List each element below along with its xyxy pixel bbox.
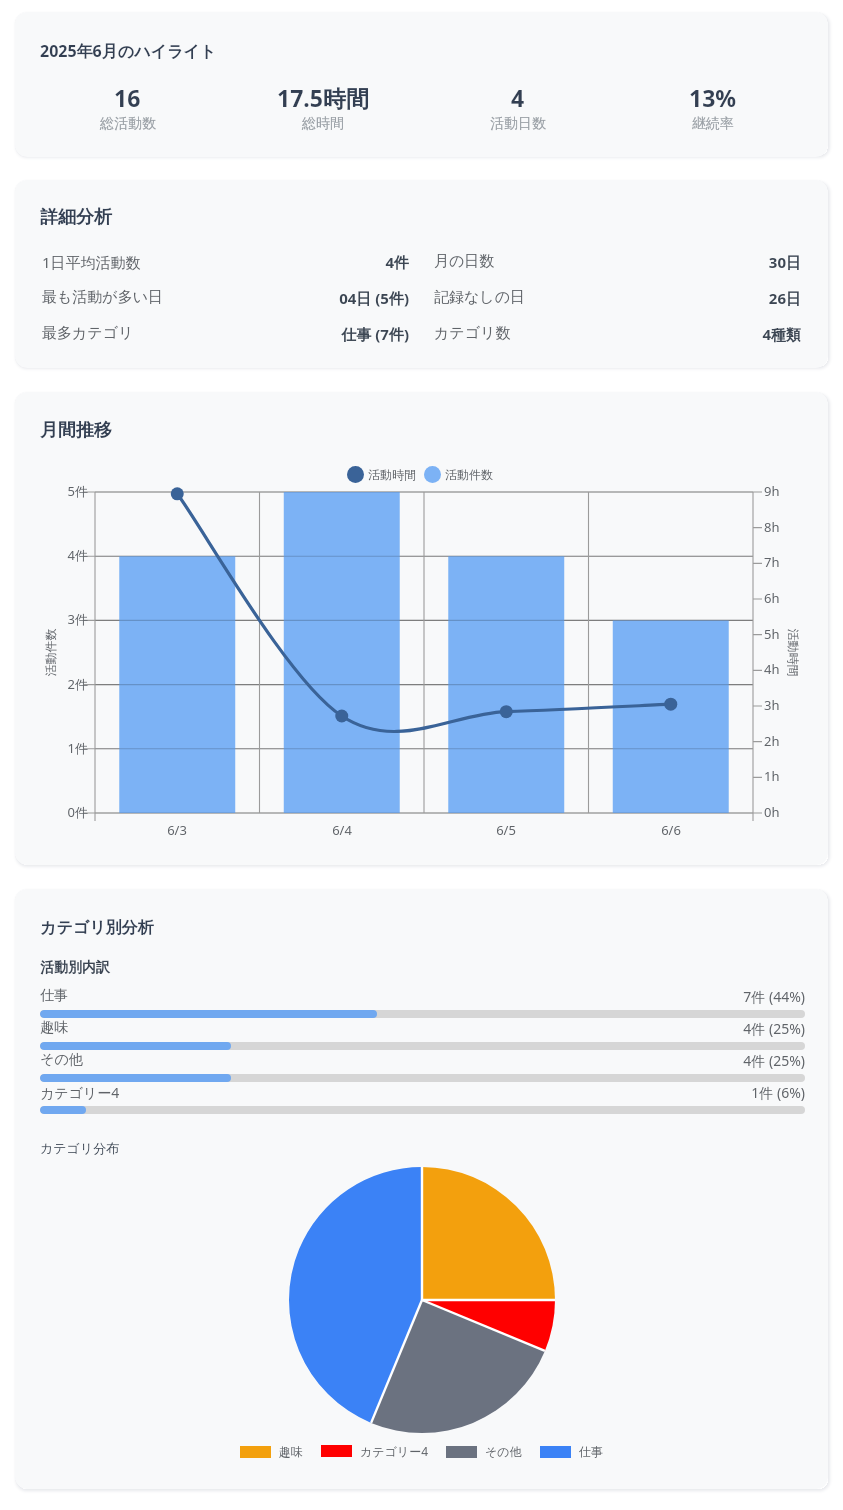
staticText: 2025年6月のハイライト — [40, 40, 217, 62]
staticText: 0件 — [38, 803, 88, 821]
staticText: 1日平均活動数 — [42, 252, 141, 272]
staticText: 30日 — [434, 252, 801, 272]
button[interactable]: 最も活動が多い日 — [42, 280, 801, 316]
staticText: 活動時間 — [785, 628, 800, 676]
staticText: 詳細分析 — [40, 206, 112, 229]
button[interactable]: 趣味 — [240, 1444, 303, 1459]
staticText: 1件 (6%) — [40, 1083, 805, 1102]
button[interactable]: 月間推移 — [15, 392, 828, 865]
staticText: 2h — [764, 732, 780, 750]
button[interactable]: 2025年6月のハイライト — [15, 12, 828, 157]
staticText: 5件 — [38, 482, 88, 500]
staticText: 継続率 — [692, 115, 734, 133]
staticText: 04日 (5件) — [42, 288, 409, 308]
staticText: 9h — [764, 482, 780, 500]
staticText: 1件 — [38, 739, 88, 757]
staticText: 16 — [114, 82, 141, 113]
button[interactable]: その他 — [40, 1051, 805, 1083]
staticText: 17.5時間 — [277, 82, 369, 113]
staticText: 最も活動が多い日 — [42, 288, 164, 307]
staticText: 4種類 — [434, 324, 801, 344]
staticText: 趣味 — [40, 1019, 68, 1037]
staticText: 6/5 — [466, 821, 546, 839]
button[interactable]: 最多カテゴリ — [42, 316, 801, 352]
button[interactable]: 詳細分析 — [15, 180, 828, 368]
button[interactable]: 仕事 — [540, 1444, 603, 1459]
staticText: 最多カテゴリ — [42, 324, 134, 343]
staticText: 月の日数 — [434, 252, 495, 271]
staticText: カテゴリ数 — [434, 324, 511, 343]
staticText: 活動別内訳 — [40, 959, 110, 977]
staticText: 仕事 — [40, 987, 68, 1005]
button[interactable]: カテゴリ別分析 — [15, 889, 828, 1489]
staticText: 活動件数 — [42, 628, 57, 676]
staticText: カテゴリ別分析 — [40, 918, 154, 938]
staticText: 3件 — [38, 610, 88, 628]
staticText: 活動時間 — [368, 467, 416, 482]
staticText: 仕事 — [579, 1444, 603, 1459]
staticText: 4件 (25%) — [40, 1051, 805, 1070]
button[interactable]: その他 — [446, 1444, 522, 1459]
staticText: 4件 — [42, 252, 409, 272]
staticText: 記録なしの日 — [434, 288, 526, 307]
staticText: 4件 — [38, 546, 88, 564]
staticText: 13% — [689, 82, 737, 113]
button[interactable]: 趣味 — [40, 1019, 805, 1051]
staticText: 活動件数 — [445, 467, 493, 482]
staticText: その他 — [485, 1444, 522, 1459]
staticText: 0h — [764, 803, 780, 821]
staticText: 総活動数 — [100, 115, 156, 133]
staticText: 1h — [764, 767, 780, 785]
button[interactable]: 仕事 — [40, 987, 805, 1019]
staticText: 仕事 (7件) — [42, 324, 409, 344]
staticText: 6/3 — [137, 821, 217, 839]
button[interactable]: カテゴリー4 — [321, 1443, 428, 1459]
button[interactable]: 1日平均活動数 — [42, 244, 801, 280]
staticText: 活動日数 — [490, 115, 546, 133]
button[interactable]: カテゴリー4 — [40, 1083, 805, 1115]
staticText: 4h — [764, 660, 780, 678]
staticText: 6h — [764, 589, 780, 607]
staticText: 3h — [764, 696, 780, 714]
staticText: 8h — [764, 518, 780, 536]
staticText: カテゴリー4 — [40, 1083, 120, 1102]
staticText: その他 — [40, 1051, 83, 1069]
staticText: 4件 (25%) — [40, 1019, 805, 1038]
staticText: 6/6 — [631, 821, 711, 839]
staticText: 趣味 — [279, 1444, 303, 1459]
staticText: 4 — [511, 82, 525, 113]
staticText: 7件 (44%) — [40, 987, 805, 1006]
staticText: 月間推移 — [40, 419, 112, 442]
staticText: カテゴリ分布 — [40, 1140, 120, 1156]
staticText: 26日 — [434, 288, 801, 308]
staticText: 7h — [764, 553, 780, 571]
staticText: 総時間 — [302, 115, 344, 133]
staticText: 5h — [764, 625, 780, 643]
staticText: 2件 — [38, 675, 88, 693]
staticText: カテゴリー4 — [360, 1443, 428, 1459]
staticText: 6/4 — [302, 821, 382, 839]
